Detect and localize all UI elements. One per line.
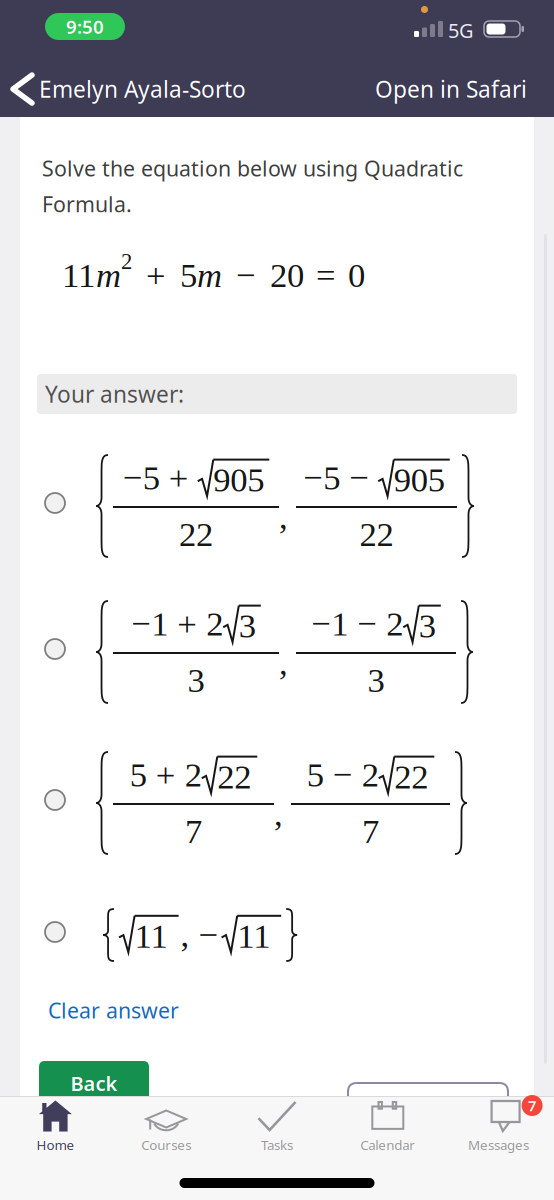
staticText: , <box>274 795 283 833</box>
staticText: = <box>316 256 336 294</box>
button[interactable]: Open in Safari <box>375 74 527 104</box>
staticText: 11 <box>62 256 96 294</box>
staticText: 9:50 <box>66 14 104 39</box>
button[interactable]: Clear answer <box>48 996 179 1024</box>
button[interactable]: Next <box>348 1083 508 1098</box>
staticText: −1 + 2 <box>131 605 223 643</box>
button[interactable]: Back <box>39 1061 149 1097</box>
button[interactable]: Calendar <box>332 1101 443 1154</box>
staticText: Your answer: <box>45 379 184 409</box>
staticText: 2 <box>121 249 132 274</box>
button[interactable]: −5 + <box>45 454 474 558</box>
staticText: 3 <box>187 661 204 699</box>
staticText: − <box>236 256 256 294</box>
staticText: m <box>197 256 222 294</box>
staticText: Tasks <box>261 1136 293 1154</box>
staticText: 905 <box>213 461 264 499</box>
staticText: 22 <box>217 758 251 796</box>
staticText: Clear answer <box>48 996 179 1024</box>
staticText: 905 <box>394 461 445 499</box>
staticText: Messages <box>468 1136 529 1154</box>
staticText: + <box>146 256 166 294</box>
staticText: Calendar <box>360 1136 415 1154</box>
staticText: 5 <box>180 256 197 294</box>
staticText: 5 − 2 <box>307 756 379 794</box>
staticText: Open in Safari <box>375 74 527 104</box>
button[interactable]: −1 + 2 <box>45 600 473 704</box>
staticText: , − <box>181 916 219 954</box>
staticText: 7 <box>362 812 379 850</box>
staticText: 3 <box>239 607 256 645</box>
button[interactable]: Home <box>0 1101 111 1154</box>
staticText: , <box>279 498 288 536</box>
staticText: 0 <box>348 256 365 294</box>
button[interactable]: Courses <box>111 1101 222 1154</box>
staticText: 11 <box>135 917 169 955</box>
staticText: Emelyn Ayala-Sorto <box>39 74 246 104</box>
staticText: 11 <box>237 917 271 955</box>
button[interactable]: 11 <box>45 908 297 962</box>
staticText: Solve the equation below using Quadratic… <box>42 154 463 218</box>
staticText: Courses <box>141 1136 191 1154</box>
staticText: −1 − 2 <box>311 605 403 643</box>
staticText: 7 <box>528 1096 536 1115</box>
staticText: 20 <box>270 256 304 294</box>
staticText: 3 <box>419 607 436 645</box>
staticText: −5 + <box>123 459 198 497</box>
staticText: Home <box>36 1136 74 1154</box>
button[interactable]: Messages <box>443 1101 554 1154</box>
staticText: 22 <box>179 515 213 553</box>
staticText: 5G <box>448 17 474 44</box>
staticText: Back <box>70 1070 117 1097</box>
staticText: 22 <box>359 515 393 553</box>
staticText: 5 + 2 <box>130 756 202 794</box>
button[interactable]: 5 + 2 <box>45 751 467 855</box>
staticText: 22 <box>394 758 428 796</box>
staticText: −5 − <box>303 459 378 497</box>
staticText: 7 <box>185 812 202 850</box>
staticText: 3 <box>367 661 384 699</box>
button[interactable]: Back to Emelyn Ayala-Sorto <box>13 74 246 104</box>
staticText: m <box>96 256 121 294</box>
button[interactable]: Tasks <box>222 1101 332 1154</box>
staticText: , <box>279 644 288 682</box>
